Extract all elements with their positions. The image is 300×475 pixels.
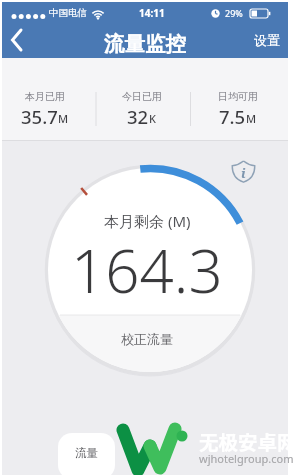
staticText: M — [58, 111, 69, 126]
staticText: 中国电信 — [49, 7, 87, 19]
staticText: M — [246, 111, 257, 126]
staticText: 日均可用 — [218, 90, 258, 103]
staticText: 设置 — [254, 32, 280, 48]
staticText: 校正流量 — [121, 331, 173, 347]
staticText: K — [149, 111, 156, 126]
staticText: wjhotelgroup.com — [199, 451, 294, 466]
staticText: 本月已用 — [25, 90, 65, 103]
staticText: 32 — [127, 104, 149, 129]
staticText: 今日已用 — [122, 90, 162, 103]
button[interactable]: 设置 — [254, 32, 280, 48]
button[interactable] — [2, 21, 32, 58]
staticText: 29% — [225, 7, 243, 19]
staticText: 流量监控 — [104, 31, 186, 57]
button[interactable]: i — [231, 160, 256, 183]
staticText: 35.7 — [21, 104, 58, 129]
button[interactable]: 校正流量 — [87, 325, 207, 353]
button[interactable]: 流量 — [58, 433, 115, 475]
staticText: 164.3 — [71, 229, 223, 311]
staticText: 7.5 — [219, 104, 246, 129]
staticText: 14:11 — [139, 6, 165, 20]
staticText: 无极安卓网 — [199, 427, 297, 455]
staticText: i — [241, 164, 246, 182]
staticText: 流量 — [75, 446, 98, 460]
staticText: 本月剩余 (M) — [104, 211, 191, 231]
